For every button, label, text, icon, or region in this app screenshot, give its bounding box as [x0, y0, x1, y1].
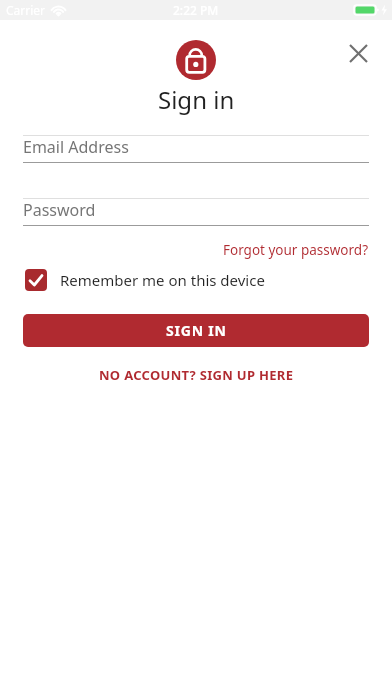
staticText: SIGN IN: [166, 321, 227, 340]
staticText: Sign in: [158, 83, 235, 116]
button[interactable]: SIGN IN: [23, 314, 369, 347]
button[interactable]: Email Address: [23, 135, 369, 163]
staticText: Remember me on this device: [60, 270, 265, 290]
button[interactable]: Forgot your password?: [223, 241, 369, 259]
staticText: Password: [23, 199, 96, 218]
button[interactable]: [342, 37, 374, 69]
staticText: Email Address: [23, 136, 129, 155]
button[interactable]: Password: [23, 198, 369, 226]
staticText: NO ACCOUNT? SIGN UP HERE: [99, 366, 294, 384]
button[interactable]: NO ACCOUNT? SIGN UP HERE: [99, 366, 294, 384]
staticText: 2:22 PM: [173, 2, 219, 18]
staticText: Forgot your password?: [223, 241, 369, 259]
button[interactable]: Remember me on this device: [25, 269, 392, 291]
staticText: Carrier: [6, 2, 46, 18]
